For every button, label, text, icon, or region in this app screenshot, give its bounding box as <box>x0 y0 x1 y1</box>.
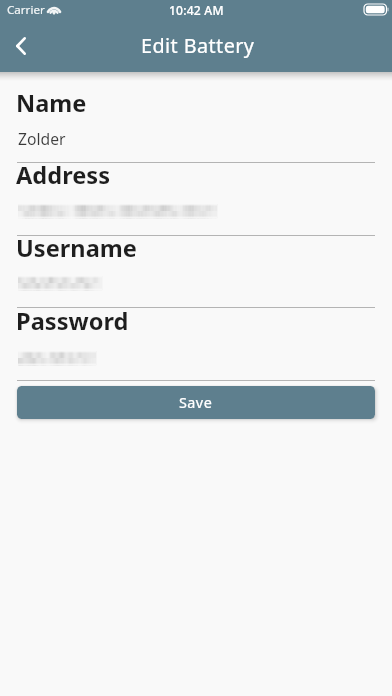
staticText: Username <box>16 232 137 264</box>
staticText: Address <box>16 159 110 191</box>
button[interactable]: Back <box>0 24 42 68</box>
staticText: Name <box>16 87 87 119</box>
button[interactable]: Password <box>17 308 375 381</box>
staticText: Zolder <box>18 128 66 149</box>
staticText: Carrier <box>7 2 45 18</box>
staticText: Save <box>179 393 213 413</box>
staticText: Edit Battery <box>141 32 255 59</box>
button[interactable]: Address <box>17 163 375 236</box>
button[interactable]: Username <box>17 236 375 309</box>
button[interactable]: Save <box>17 386 375 419</box>
button[interactable]: Name <box>17 90 375 163</box>
staticText: 10:42 AM <box>169 2 224 18</box>
staticText: Password <box>16 305 129 337</box>
